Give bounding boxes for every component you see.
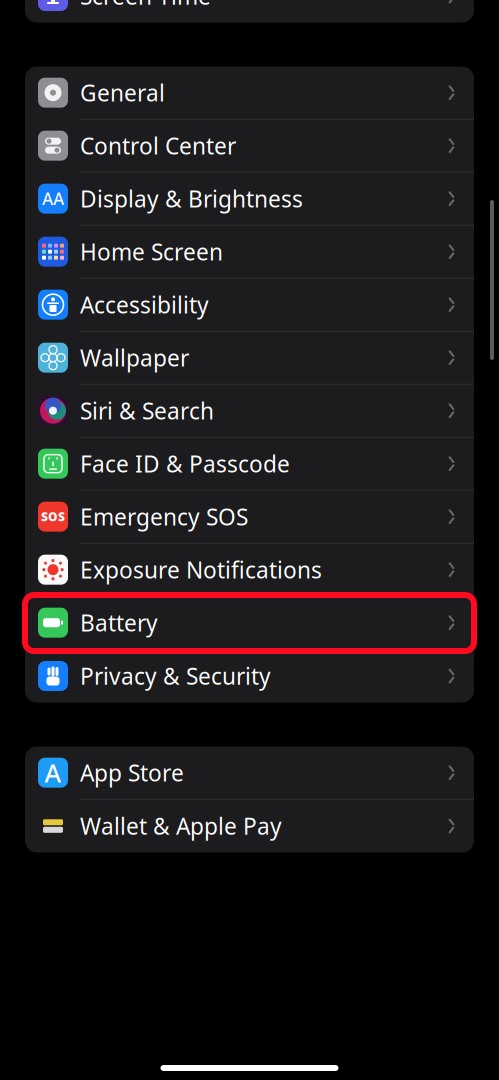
button[interactable]: Wallpaper — [25, 331, 474, 384]
staticText: Emergency SOS — [80, 502, 248, 532]
button[interactable]: General — [25, 66, 474, 119]
button[interactable]: Privacy & Security — [25, 649, 474, 702]
staticText: Face ID & Passcode — [80, 449, 290, 479]
staticText: Wallet & Apple Pay — [80, 811, 282, 841]
staticText: Exposure Notifications — [80, 555, 322, 585]
button[interactable]: Wallet & Apple Pay — [25, 799, 474, 852]
button[interactable]: A — [25, 746, 474, 799]
staticText: SOS — [41, 509, 65, 525]
button[interactable]: Screen Time — [25, 0, 474, 22]
button[interactable]: Exposure Notifications — [25, 543, 474, 596]
button[interactable]: SOS — [25, 490, 474, 543]
button[interactable]: Face ID & Passcode — [25, 437, 474, 490]
staticText: App Store — [80, 758, 184, 788]
staticText: Display & Brightness — [80, 184, 303, 214]
staticText: Accessibility — [80, 290, 209, 320]
button[interactable]: Battery — [25, 596, 474, 649]
staticText: Screen Time — [80, 0, 211, 11]
button[interactable]: Accessibility — [25, 278, 474, 331]
staticText: Home Screen — [80, 237, 223, 267]
staticText: AA — [42, 187, 64, 210]
staticText: A — [44, 756, 61, 789]
staticText: Wallpaper — [80, 343, 189, 373]
staticText: Control Center — [80, 131, 236, 161]
staticText: Siri & Search — [80, 396, 214, 426]
button[interactable]: AA — [25, 172, 474, 225]
staticText: Battery — [80, 608, 158, 638]
button[interactable]: Control Center — [25, 119, 474, 172]
button[interactable]: Siri & Search — [25, 384, 474, 437]
staticText: Privacy & Security — [80, 661, 271, 691]
staticText: General — [80, 78, 165, 108]
button[interactable]: Home Screen — [25, 225, 474, 278]
